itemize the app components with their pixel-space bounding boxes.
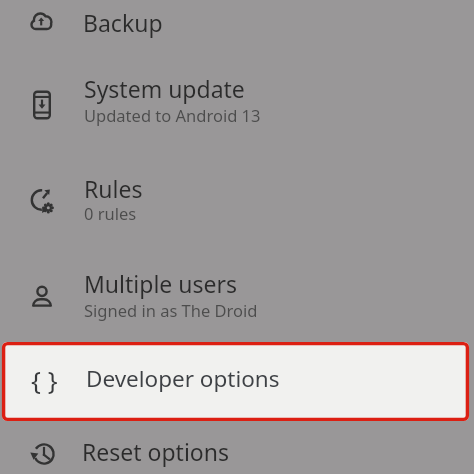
button[interactable]: Rules — [0, 164, 474, 236]
staticText: 0 rules — [84, 202, 137, 224]
staticText: Developer options — [86, 363, 280, 394]
staticText: Updated to Android 13 — [84, 104, 261, 126]
button[interactable]: Reset options — [0, 427, 474, 474]
staticText: Multiple users — [84, 268, 237, 299]
staticText: { } — [31, 362, 58, 394]
staticText: Backup — [83, 7, 163, 38]
staticText: Signed in as The Droid — [84, 299, 258, 321]
button[interactable]: { } — [0, 342, 474, 421]
staticText: Reset options — [82, 436, 229, 467]
staticText: System update — [84, 73, 245, 104]
button[interactable]: System update — [0, 64, 474, 140]
button[interactable]: Multiple users — [0, 260, 474, 332]
button[interactable]: Backup — [0, 0, 474, 52]
staticText: Rules — [84, 173, 143, 204]
